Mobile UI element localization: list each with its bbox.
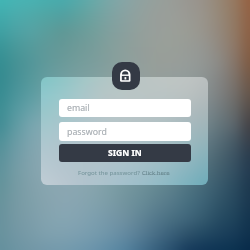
button[interactable]: Secure sign in <box>112 62 140 90</box>
button[interactable]: email <box>59 99 191 117</box>
staticText: email <box>67 102 90 114</box>
button[interactable]: SIGN IN <box>59 144 191 162</box>
button[interactable]: Click here <box>142 168 170 176</box>
staticText: SIGN IN <box>108 147 142 159</box>
button[interactable]: password <box>59 122 191 141</box>
staticText: Forgot the password? <box>78 168 142 176</box>
staticText: password <box>67 126 107 138</box>
